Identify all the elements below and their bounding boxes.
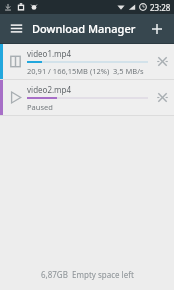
staticText: Paused — [27, 102, 53, 112]
button[interactable]: Pause download — [0, 44, 174, 79]
button[interactable]: Open navigation menu — [0, 14, 32, 43]
staticText: 23:28 — [150, 2, 171, 13]
button[interactable]: Cancel download — [150, 80, 174, 115]
button[interactable]: Resume download — [0, 80, 174, 115]
staticText: Download Manager — [32, 21, 136, 36]
staticText: video2.mp4 — [27, 84, 72, 95]
staticText: 6,87GB Empty space left — [41, 269, 134, 280]
staticText: 3,5 MB/s — [113, 66, 144, 76]
button[interactable]: Add download — [142, 14, 172, 43]
button[interactable]: Cancel download — [150, 44, 174, 79]
button[interactable]: Pause download — [3, 44, 27, 79]
staticText: 20,91 / 166,15MB (12%) — [27, 66, 110, 76]
button[interactable]: Resume download — [3, 80, 27, 115]
staticText: video1.mp4 — [27, 48, 72, 59]
